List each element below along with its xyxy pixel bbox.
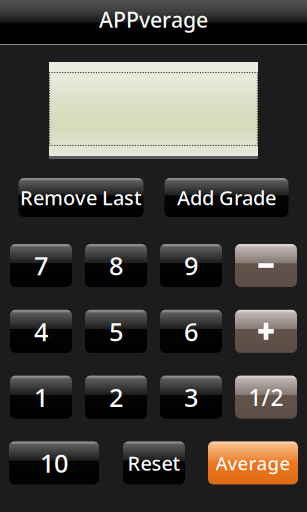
button[interactable]: 6 bbox=[160, 310, 222, 353]
button[interactable]: 4 bbox=[10, 310, 72, 353]
staticText: 9 bbox=[184, 249, 198, 282]
button[interactable]: 1/2 bbox=[235, 376, 297, 419]
staticText: 1/2 bbox=[248, 382, 283, 412]
staticText: 5 bbox=[109, 314, 123, 348]
button[interactable]: 9 bbox=[160, 244, 222, 287]
staticText: 7 bbox=[34, 249, 48, 282]
button[interactable]: Reset bbox=[123, 441, 185, 484]
staticText: 4 bbox=[34, 314, 48, 348]
staticText: 2 bbox=[109, 380, 123, 414]
button[interactable]: Plus bbox=[235, 310, 297, 353]
staticText: Add Grade bbox=[177, 184, 276, 211]
button[interactable]: 8 bbox=[85, 244, 147, 287]
button[interactable]: Minus bbox=[235, 244, 297, 287]
staticText: APPverage bbox=[99, 5, 208, 34]
staticText: 10 bbox=[40, 446, 68, 480]
button[interactable]: 2 bbox=[85, 376, 147, 419]
staticText: 6 bbox=[184, 314, 198, 348]
button[interactable]: Add Grade bbox=[164, 178, 288, 217]
button[interactable]: Average bbox=[208, 441, 298, 484]
button[interactable]: 5 bbox=[85, 310, 147, 353]
staticText: Average bbox=[215, 450, 290, 475]
button[interactable]: 7 bbox=[10, 244, 72, 287]
staticText: Remove Last bbox=[20, 184, 142, 211]
staticText: 3 bbox=[184, 380, 198, 414]
staticText: 8 bbox=[109, 249, 123, 282]
button[interactable]: Remove Last bbox=[18, 178, 143, 217]
staticText: Reset bbox=[127, 450, 180, 476]
button[interactable]: 1 bbox=[10, 376, 72, 419]
staticText: 1 bbox=[34, 380, 48, 414]
button[interactable]: 3 bbox=[160, 376, 222, 419]
button[interactable]: 10 bbox=[9, 441, 99, 484]
